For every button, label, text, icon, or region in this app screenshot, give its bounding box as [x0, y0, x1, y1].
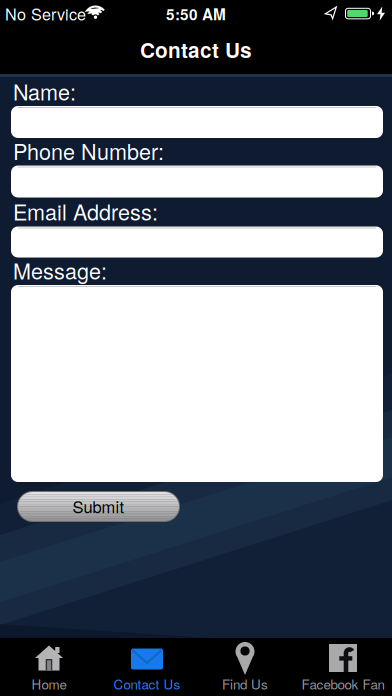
staticText: Contact Us [140, 35, 252, 64]
staticText: Home [31, 674, 66, 693]
staticText: Submit [72, 494, 124, 518]
button[interactable]: Submit [17, 491, 180, 522]
button[interactable]: Facebook Fan [294, 638, 392, 696]
button[interactable]: Home [0, 638, 98, 696]
staticText: Find Us [222, 674, 268, 693]
staticText: Phone Number: [13, 135, 164, 166]
staticText: Message: [13, 255, 107, 286]
staticText: 5:50 AM [166, 3, 226, 25]
button[interactable]: Contact Us [98, 638, 196, 696]
button[interactable]: Find Us [196, 638, 294, 696]
staticText: Email Address: [13, 196, 158, 227]
staticText: Contact Us [113, 674, 180, 693]
staticText: Facebook Fan [301, 674, 384, 693]
staticText: No Service [5, 2, 86, 25]
staticText: Name: [13, 76, 76, 107]
